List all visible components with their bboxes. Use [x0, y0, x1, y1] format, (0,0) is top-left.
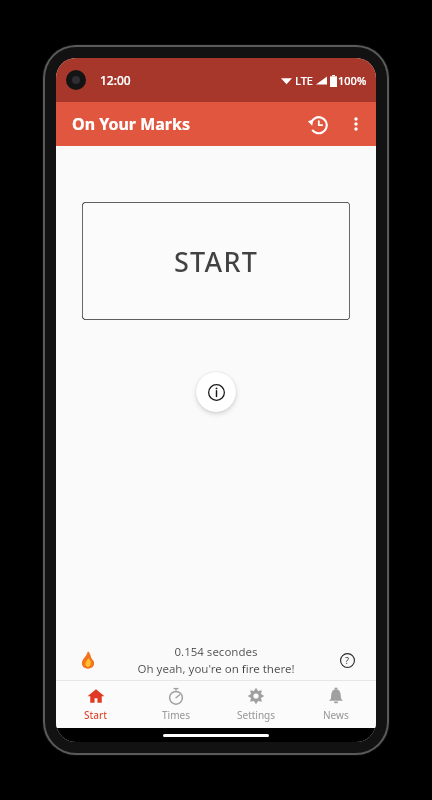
- button[interactable]: News: [296, 681, 376, 728]
- staticText: Start: [84, 708, 108, 722]
- staticText: On Your Marks: [72, 113, 190, 135]
- button[interactable]: Start: [56, 681, 136, 728]
- button[interactable]: History: [298, 104, 338, 144]
- button[interactable]: Streak: [78, 650, 98, 670]
- staticText: Settings: [237, 708, 276, 722]
- button[interactable]: START: [82, 202, 350, 320]
- button[interactable]: More options: [338, 106, 374, 142]
- button[interactable]: Settings: [216, 681, 296, 728]
- staticText: 100%: [338, 73, 367, 88]
- button[interactable]: Times: [136, 681, 216, 728]
- button[interactable]: Info: [196, 372, 236, 412]
- staticText: Oh yeah, you're on fire there!: [137, 661, 295, 677]
- staticText: START: [174, 243, 259, 280]
- staticText: Times: [162, 708, 190, 722]
- staticText: 12:00: [100, 72, 131, 88]
- staticText: 0.154 secondes: [174, 644, 258, 660]
- button[interactable]: Help: [336, 649, 358, 671]
- staticText: ?: [345, 654, 350, 666]
- staticText: News: [323, 708, 349, 722]
- staticText: LTE: [295, 73, 313, 88]
